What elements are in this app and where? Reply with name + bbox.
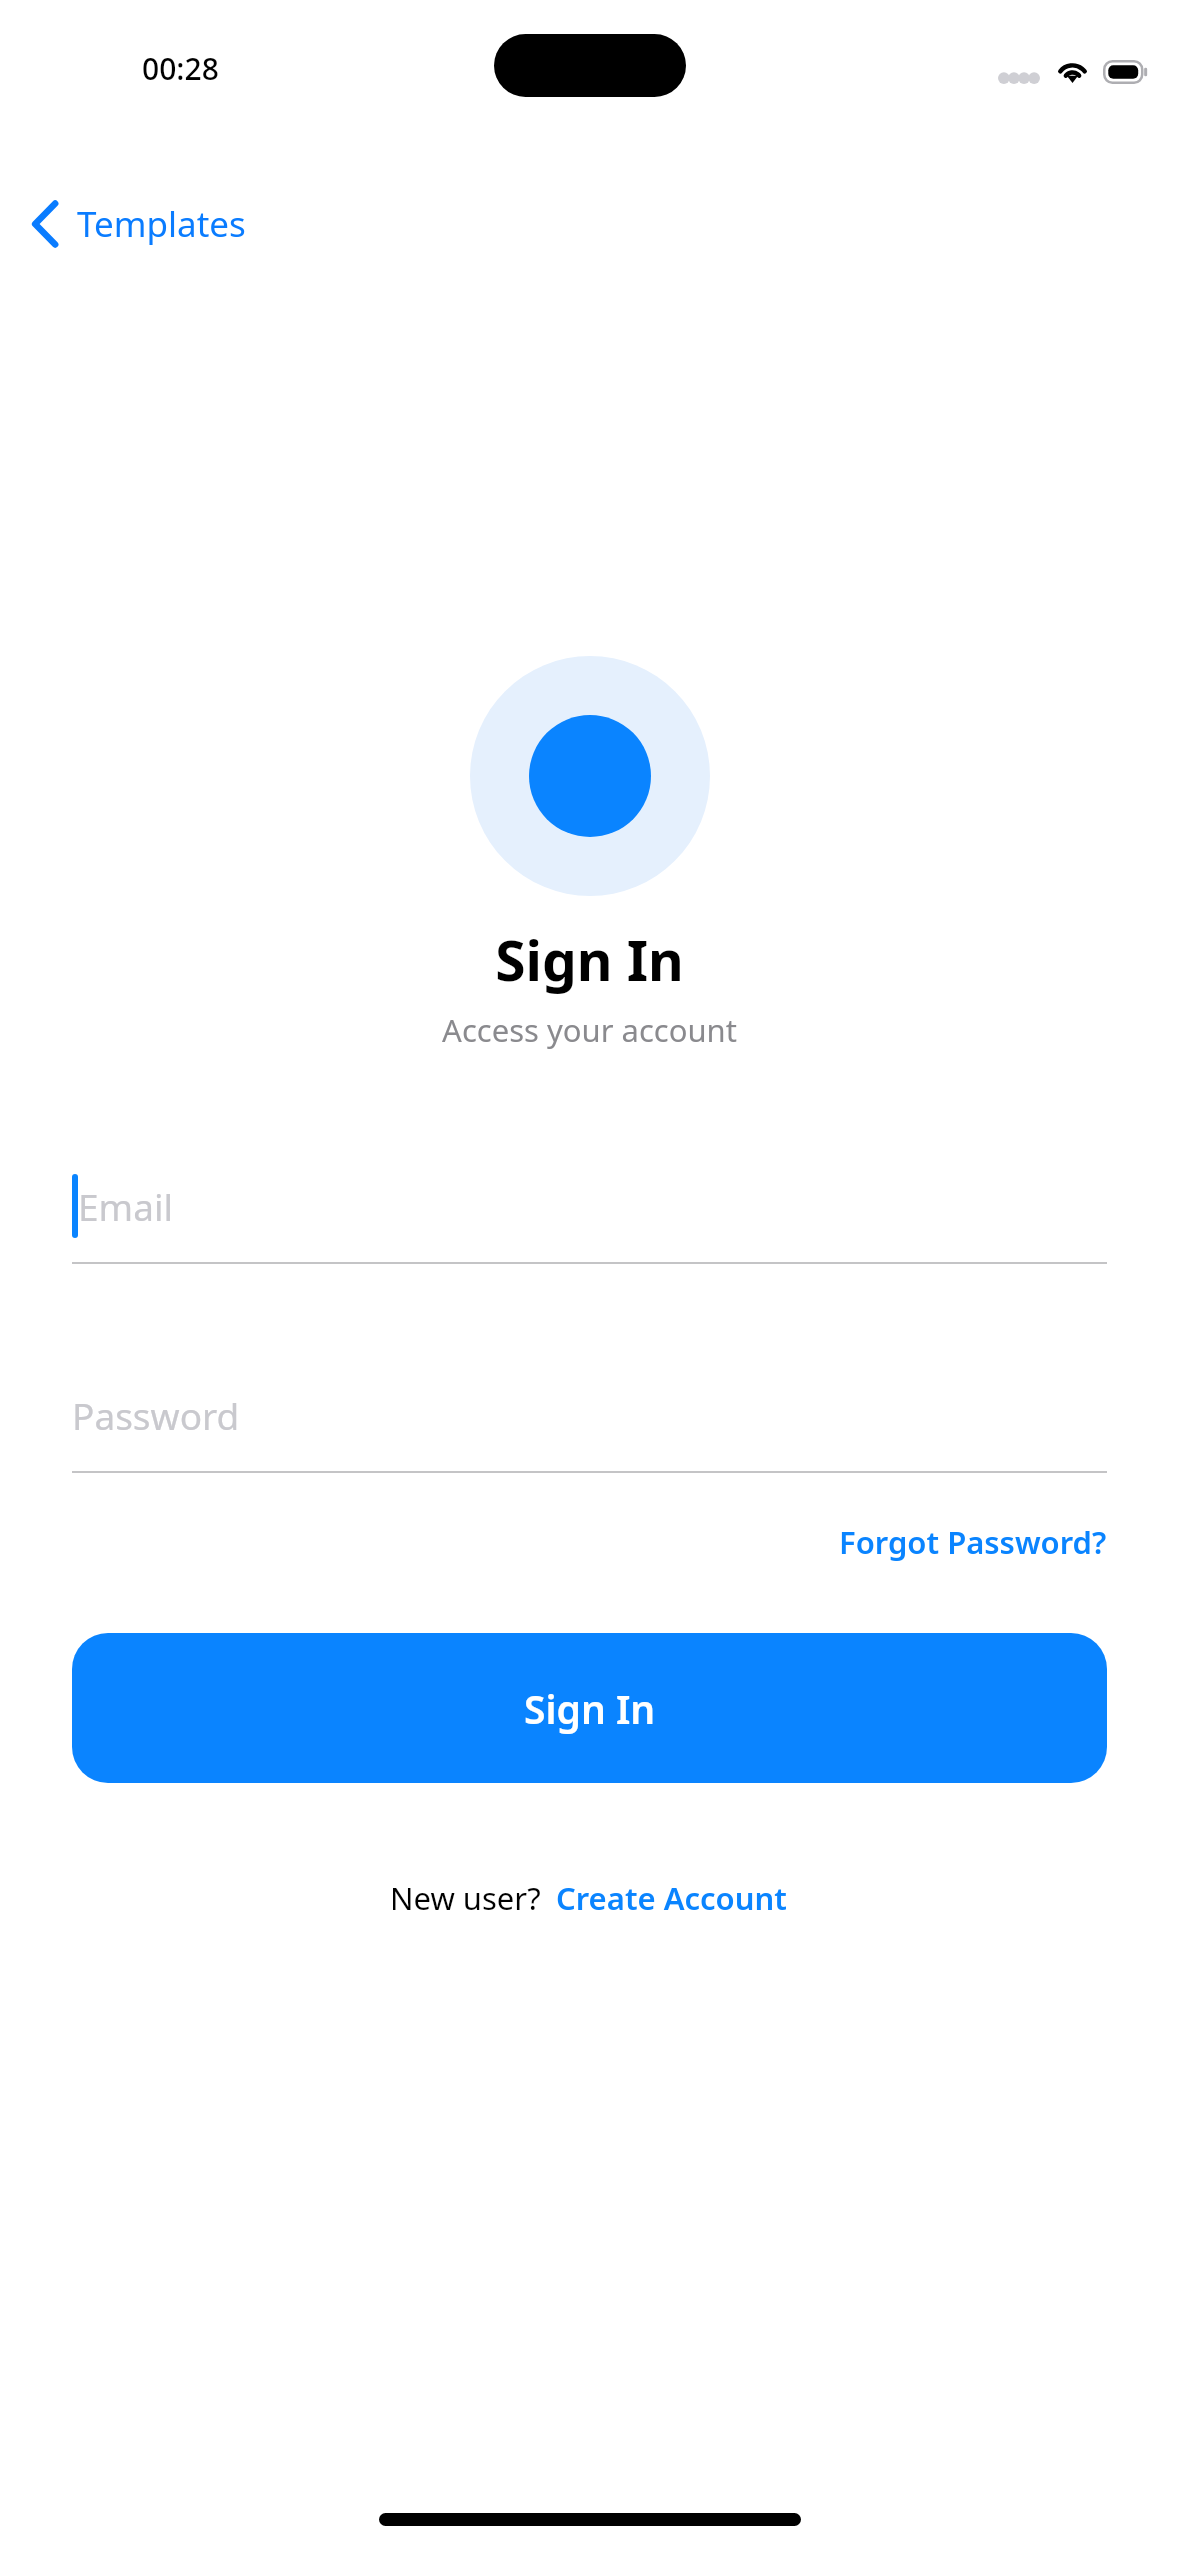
button[interactable]: Password	[72, 1356, 1107, 1473]
staticText: Password	[72, 1390, 240, 1440]
staticText: Access your account	[0, 1009, 1179, 1051]
staticText: Email	[78, 1181, 174, 1231]
button[interactable]: Create Account	[554, 1875, 789, 1921]
staticText: 00:28	[142, 48, 219, 89]
button[interactable]: Back to Templates	[18, 186, 260, 262]
staticText: Sign In	[524, 1682, 656, 1735]
staticText: Templates	[77, 200, 246, 248]
button[interactable]: Sign In	[72, 1633, 1107, 1783]
staticText: Sign In	[0, 922, 1179, 997]
button[interactable]: Email	[72, 1147, 1107, 1264]
button[interactable]: Forgot Password?	[835, 1513, 1111, 1571]
staticText: New user?	[390, 1877, 541, 1919]
